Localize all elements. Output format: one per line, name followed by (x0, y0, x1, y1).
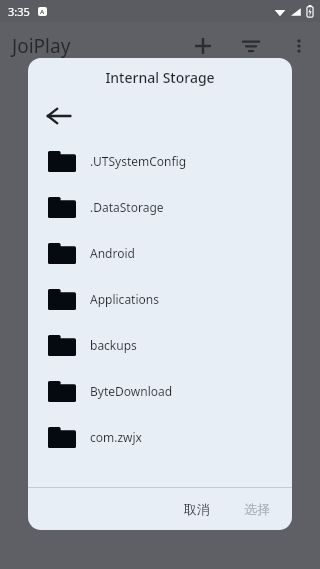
button[interactable]: Back (44, 101, 74, 131)
button[interactable]: Filter (238, 33, 264, 59)
staticText: Android (90, 245, 135, 261)
staticText: com.zwjx (90, 429, 142, 445)
button[interactable]: .DataStorage (28, 184, 292, 230)
staticText: backups (90, 337, 137, 353)
button[interactable]: Android (28, 230, 292, 276)
staticText: JoiPlay (12, 33, 71, 59)
button[interactable]: .UTSystemConfig (28, 138, 292, 184)
staticText: 选择 (244, 501, 270, 517)
button[interactable]: Add (190, 33, 216, 59)
staticText: Internal Storage (105, 68, 215, 87)
staticText: .UTSystemConfig (90, 153, 187, 169)
staticText: Applications (90, 291, 159, 307)
staticText: ByteDownload (90, 383, 173, 399)
staticText: 取消 (184, 501, 210, 517)
staticText: .DataStorage (90, 199, 164, 215)
button[interactable]: 取消 (174, 495, 220, 523)
button[interactable]: More options (286, 33, 312, 59)
button[interactable]: 选择 (234, 495, 280, 523)
button[interactable]: com.zwjx (28, 414, 292, 460)
button[interactable]: ByteDownload (28, 368, 292, 414)
staticText: A (40, 8, 45, 16)
button[interactable]: backups (28, 322, 292, 368)
staticText: 3:35 (8, 4, 30, 19)
button[interactable]: Applications (28, 276, 292, 322)
